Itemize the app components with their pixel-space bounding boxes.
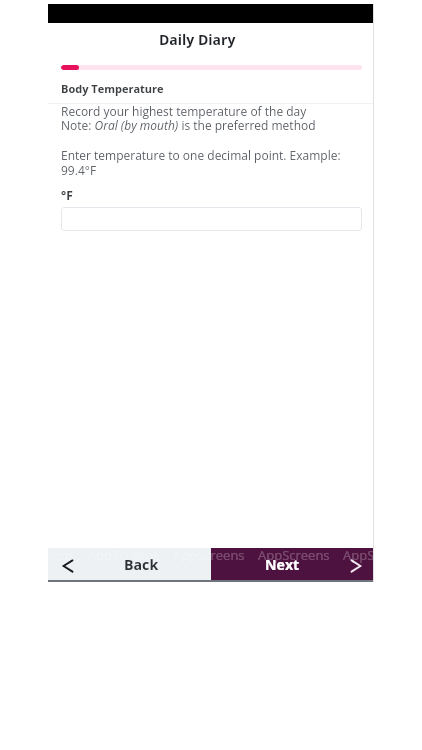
staticText: AppScreens [48, 546, 75, 564]
button[interactable]: Temperature input [61, 207, 362, 231]
button[interactable]: Next [211, 548, 374, 580]
staticText: AppScreens [173, 546, 245, 564]
staticText: AppScreens [88, 546, 160, 564]
staticText: Daily Diary [159, 30, 236, 49]
staticText: Back [124, 555, 159, 574]
staticText: Body Temperature [61, 81, 164, 96]
button[interactable]: Back [48, 548, 211, 580]
staticText: °F [61, 187, 73, 203]
staticText: Next [265, 555, 300, 574]
staticText: Enter temperature to one decimal point. … [61, 147, 362, 179]
staticText: Record your highest temperature of the d… [61, 103, 362, 119]
staticText: Note: Oral (by mouth) is the preferred m… [61, 117, 362, 133]
staticText: AppScreens [343, 546, 374, 564]
staticText: AppScreens [258, 546, 330, 564]
